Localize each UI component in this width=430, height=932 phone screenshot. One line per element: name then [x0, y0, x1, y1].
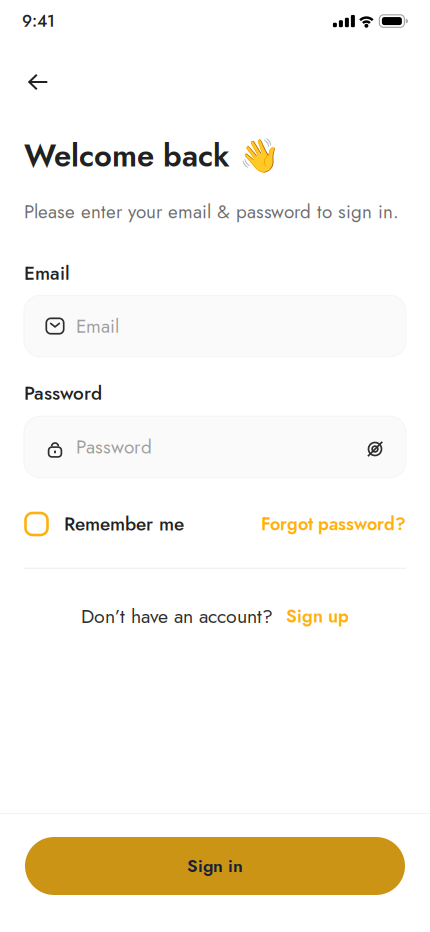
- staticText: Forgot password?: [261, 511, 406, 537]
- staticText: Password: [24, 379, 102, 407]
- staticText: 9:41: [22, 9, 55, 33]
- staticText: Please enter your email & password to si…: [24, 198, 399, 225]
- staticText: Remember me: [64, 510, 184, 538]
- button[interactable]: Forgot password?: [261, 511, 406, 537]
- button[interactable]: Remember me: [25, 513, 47, 535]
- staticText: Email: [76, 312, 119, 340]
- button[interactable]: Show password: [365, 437, 385, 457]
- button[interactable]: Email: [24, 295, 406, 357]
- staticText: Don’t have an account?: [81, 602, 273, 630]
- button[interactable]: Sign in: [25, 837, 405, 895]
- staticText: Welcome back 👋: [24, 134, 280, 178]
- button[interactable]: Back: [16, 60, 60, 104]
- staticText: Password: [76, 433, 152, 461]
- staticText: Sign in: [187, 853, 243, 879]
- staticText: Sign up: [286, 603, 349, 629]
- staticText: Email: [24, 259, 70, 287]
- button[interactable]: Password: [24, 416, 406, 478]
- button[interactable]: Sign up: [286, 603, 349, 629]
